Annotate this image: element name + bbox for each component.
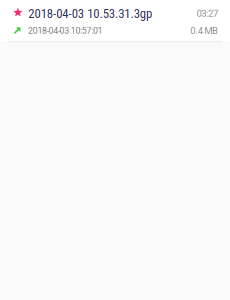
- staticText: 03:27: [196, 8, 218, 19]
- button[interactable]: 2018-04-03 10.53.31.3gp: [0, 0, 230, 41]
- staticText: 2018-04-03 10:57:01: [28, 25, 103, 36]
- staticText: 2018-04-03 10.53.31.3gp: [28, 6, 152, 21]
- staticText: 0.4 MB: [190, 25, 218, 36]
